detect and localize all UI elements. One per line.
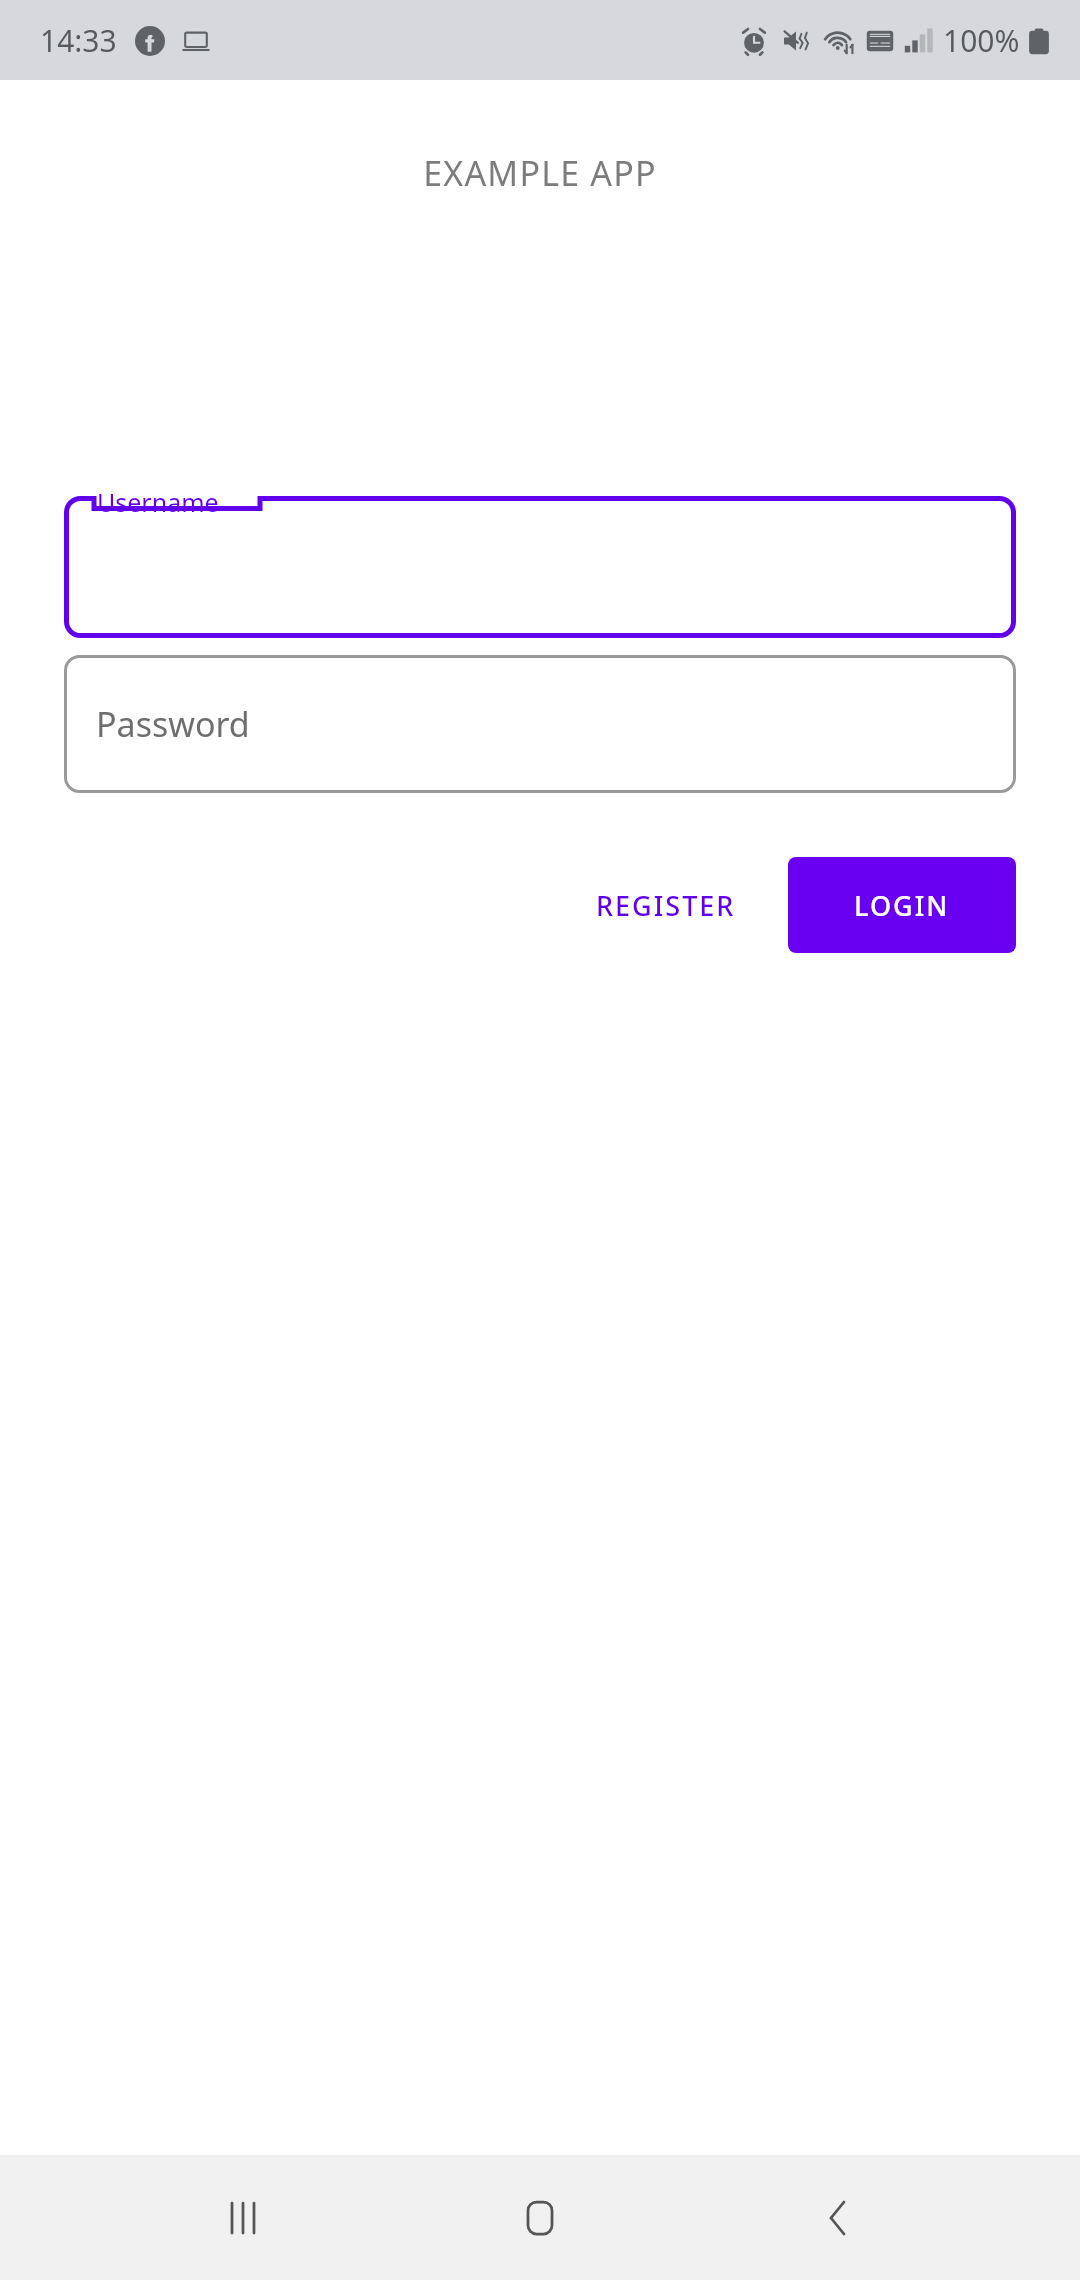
button[interactable]: Password <box>64 655 1016 793</box>
staticText: REGISTER <box>596 887 736 924</box>
button[interactable]: LOGIN <box>788 857 1016 953</box>
button[interactable]: Back <box>783 2163 893 2273</box>
button[interactable]: Username <box>64 496 1016 638</box>
staticText: EXAMPLE APP <box>0 150 1080 196</box>
button[interactable]: Home <box>485 2163 595 2273</box>
button[interactable]: REGISTER <box>572 865 760 946</box>
staticText: LOGIN <box>854 887 950 924</box>
staticText: Password <box>96 701 250 747</box>
button[interactable]: Recent apps <box>188 2163 298 2273</box>
staticText: Username <box>97 485 219 519</box>
staticText: 100% <box>943 20 1020 61</box>
staticText: 14:33 <box>40 20 117 61</box>
